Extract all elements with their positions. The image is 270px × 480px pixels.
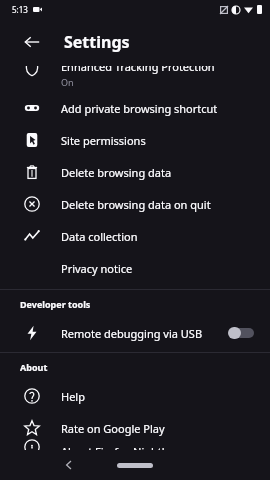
- staticText: Developer tools: [20, 298, 91, 310]
- button[interactable]: Back: [20, 30, 44, 54]
- staticText: 5:13: [12, 4, 28, 15]
- staticText: Settings: [64, 31, 130, 53]
- staticText: Delete browsing data: [61, 165, 172, 180]
- staticText: Delete browsing data on quit: [61, 197, 211, 212]
- staticText: On: [61, 76, 74, 87]
- staticText: About: [20, 361, 48, 373]
- staticText: Remote debugging via USB: [61, 326, 228, 341]
- button[interactable]: Site permissions: [0, 124, 270, 156]
- button[interactable]: Enhanced Tracking Protection: [0, 66, 270, 92]
- button[interactable]: Home: [117, 463, 153, 468]
- button[interactable]: Delete browsing data on quit: [0, 188, 270, 220]
- button[interactable]: Add private browsing shortcut: [0, 92, 270, 124]
- staticText: About Firefox Nightly: [61, 444, 171, 450]
- button[interactable]: Rate on Google Play: [0, 412, 270, 444]
- button[interactable]: Data collection: [0, 220, 270, 252]
- button[interactable]: Help: [0, 380, 270, 412]
- button[interactable]: Back: [60, 456, 78, 474]
- button[interactable]: Remote debugging via USB: [0, 317, 270, 349]
- staticText: Add private browsing shortcut: [61, 101, 218, 116]
- staticText: Data collection: [61, 229, 138, 244]
- staticText: Enhanced Tracking Protection: [61, 59, 215, 74]
- staticText: Privacy notice: [61, 261, 133, 276]
- button[interactable]: Delete browsing data: [0, 156, 270, 188]
- staticText: Rate on Google Play: [61, 421, 165, 436]
- staticText: Help: [61, 389, 85, 404]
- button[interactable]: About Firefox Nightly: [0, 444, 270, 450]
- staticText: Site permissions: [61, 133, 146, 148]
- button[interactable]: Privacy notice: [0, 252, 270, 284]
